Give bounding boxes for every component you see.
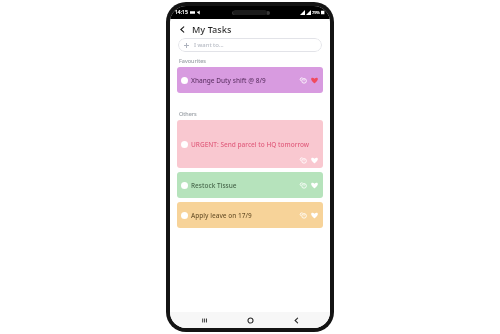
staticText: Apply leave on 17/9 [191,211,299,220]
staticText: 79% [312,10,320,15]
button[interactable]: Complete task [177,67,323,93]
button[interactable]: Favourite [310,181,318,189]
staticText: Others [179,110,197,117]
button[interactable]: Complete task [181,212,188,219]
staticText: Favourites [179,57,206,64]
staticText: I want to... [194,41,224,49]
button[interactable]: Complete task [177,202,323,228]
button[interactable]: Favourite [310,76,318,84]
button[interactable]: Snooze [299,156,307,164]
button[interactable]: Favourite [310,211,318,219]
button[interactable]: Snooze [299,181,307,189]
button[interactable]: Back [175,22,189,36]
button[interactable]: Back [284,312,308,328]
staticText: My Tasks [192,23,232,35]
staticText: Xhange Duty shift @ 8/9 [191,76,299,85]
button[interactable]: Snooze [299,76,307,84]
staticText: Restock Tissue [191,181,299,190]
button[interactable]: Complete task [181,141,188,148]
button[interactable]: Complete task [177,120,323,168]
button[interactable]: Snooze [299,211,307,219]
button[interactable]: Complete task [181,77,188,84]
button[interactable]: Home [238,312,262,328]
staticText: URGENT: Send parcel to HQ tomorrow [191,140,310,149]
button[interactable]: I want to... [178,38,322,52]
button[interactable]: Recent apps [192,312,216,328]
button[interactable]: Complete task [181,182,188,189]
button[interactable]: Favourite [310,156,318,164]
button[interactable]: Complete task [177,172,323,198]
staticText: 14:15 [175,9,188,16]
